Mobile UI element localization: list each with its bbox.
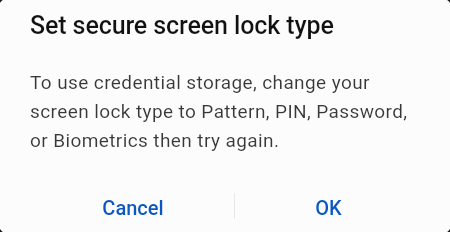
staticText: Cancel [102, 196, 164, 219]
staticText: OK [315, 196, 342, 219]
button[interactable]: OK [235, 188, 422, 226]
staticText: Set secure screen lock type [30, 11, 334, 40]
staticText: To use credential storage, change your s… [30, 71, 412, 151]
button[interactable]: Cancel [31, 188, 234, 226]
